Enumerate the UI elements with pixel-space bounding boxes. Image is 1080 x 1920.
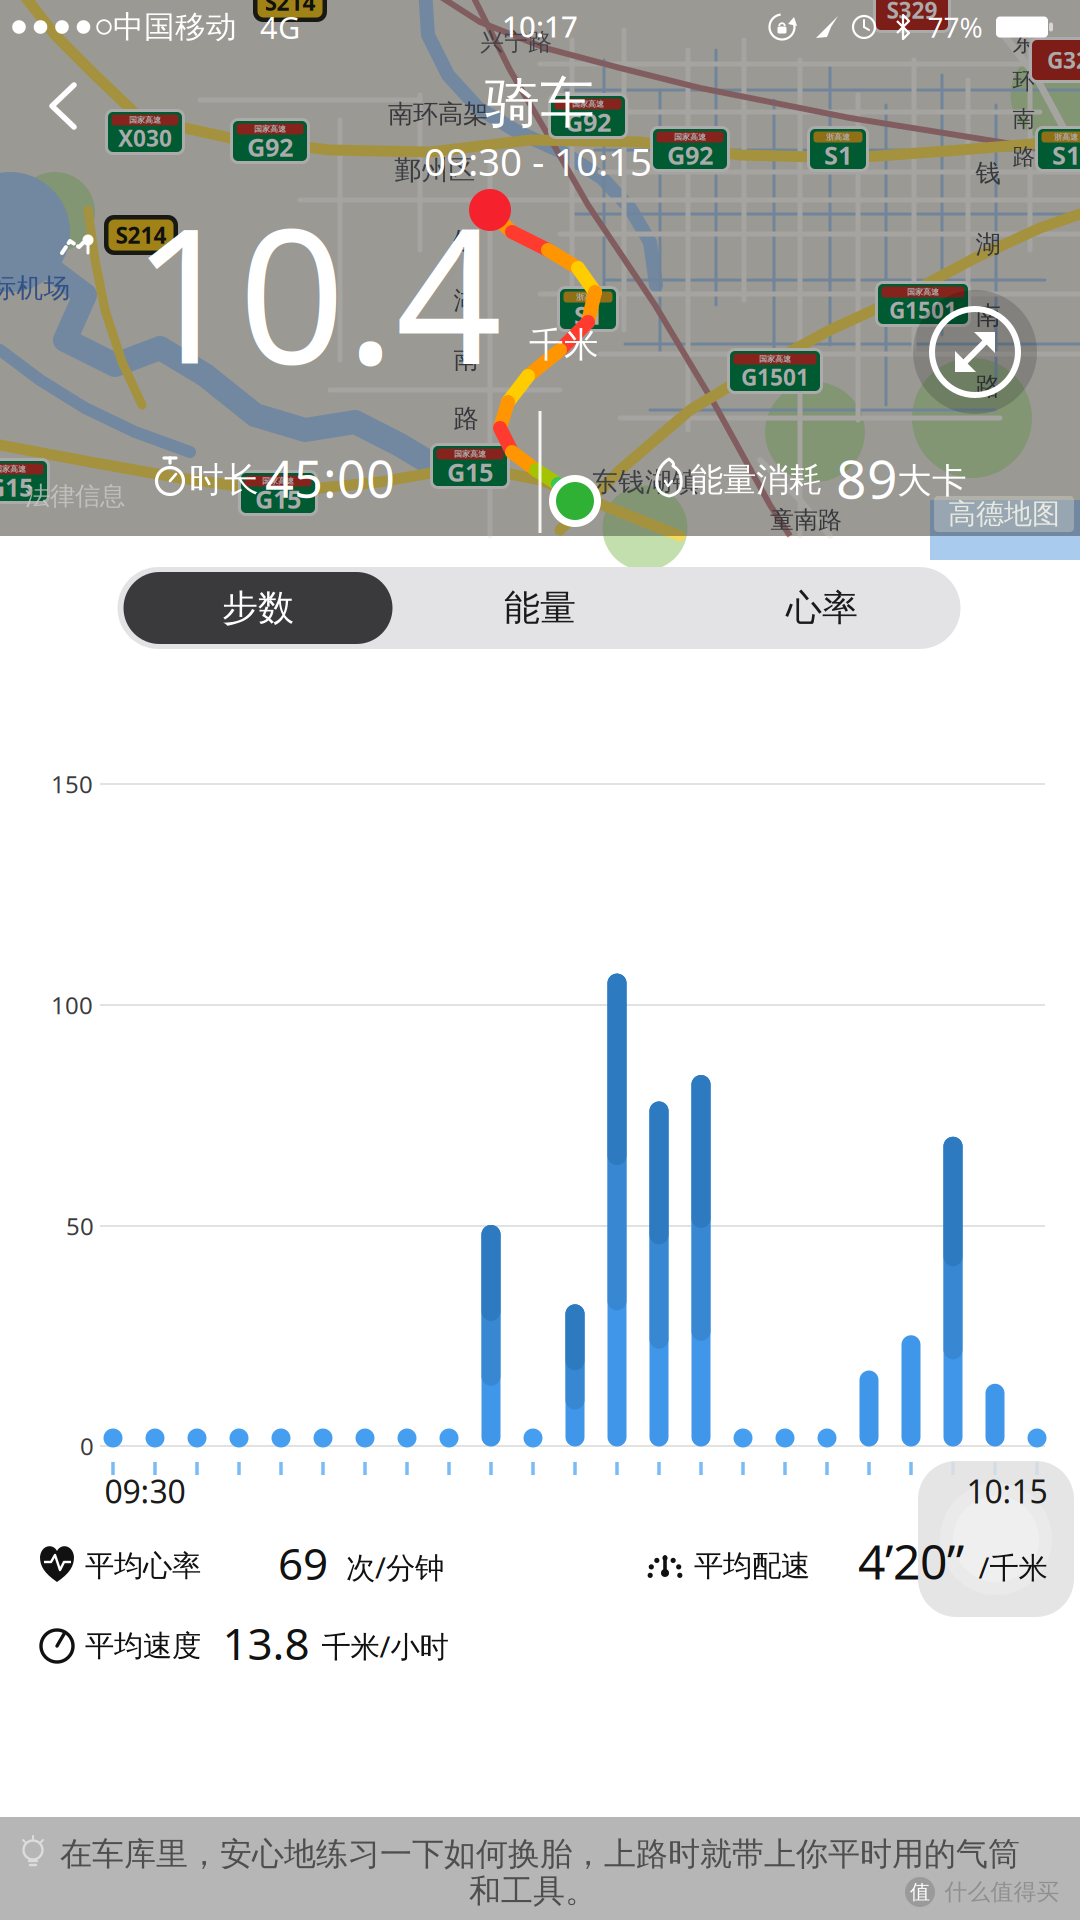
staticText: 高德地图 <box>948 497 1060 531</box>
staticText: S1 <box>574 298 602 332</box>
staticText: 10.4 <box>131 167 502 415</box>
staticText: 50 <box>66 1210 94 1242</box>
staticText: 能量 <box>504 586 576 630</box>
staticText: 千米/小时 <box>321 1626 448 1665</box>
staticText: 0 <box>80 1430 94 1462</box>
staticText: 浙高速 <box>1054 132 1078 142</box>
staticText: S1 <box>824 138 852 172</box>
button[interactable]: 能量 <box>399 567 680 649</box>
staticText: S329 <box>886 0 937 25</box>
staticText: G92 <box>565 105 611 139</box>
staticText: 45:00 <box>265 444 395 512</box>
staticText: G32 <box>1047 45 1080 75</box>
button[interactable]: 心率 <box>681 567 962 649</box>
staticText: 平均配速 <box>694 1548 810 1584</box>
staticText: 100 <box>51 989 93 1021</box>
staticText: 国家高速 <box>0 464 26 474</box>
staticText: 东 <box>1012 29 1035 57</box>
staticText: X030 <box>118 123 172 153</box>
staticText: 千米 <box>529 324 599 366</box>
staticText: 150 <box>51 768 93 800</box>
staticText: 89 <box>836 443 898 513</box>
staticText: 童南路 <box>770 505 842 535</box>
staticText: 国家高速 <box>572 99 604 109</box>
staticText: 中国移动 <box>113 8 237 46</box>
staticText: 湖 <box>453 285 478 316</box>
staticText: 浙高速 <box>826 132 850 142</box>
staticText: 平均速度 <box>85 1628 201 1664</box>
staticText: 国家高速 <box>759 354 791 364</box>
staticText: 和工具。 <box>469 1871 597 1911</box>
staticText: 能量消耗 <box>690 459 822 500</box>
staticText: 国家高速 <box>254 124 286 134</box>
staticText: 鄞州区 <box>394 154 475 186</box>
staticText: 环 <box>1012 67 1035 95</box>
staticText: 南 <box>1012 105 1035 133</box>
staticText: 路 <box>453 403 478 434</box>
staticText: 国家高速 <box>262 476 294 486</box>
staticText: G15 <box>0 470 33 504</box>
staticText: 平均心率 <box>85 1548 201 1584</box>
staticText: 路 <box>1012 143 1035 171</box>
staticText: S1 <box>1052 138 1080 172</box>
staticText: 骑车 <box>485 69 595 136</box>
staticText: 4’20” <box>858 1529 964 1593</box>
staticText: 国家高速 <box>907 287 939 297</box>
staticText: 69 <box>278 1534 328 1592</box>
staticText: 钱 <box>453 226 478 257</box>
staticText: 09:30 - 10:15 <box>424 135 652 187</box>
staticText: 国家高速 <box>129 115 161 125</box>
staticText: 东钱湖镇 <box>591 466 699 498</box>
staticText: /千米 <box>978 1547 1047 1586</box>
staticText: 兴宁路 <box>480 27 552 57</box>
button[interactable]: 步数 <box>117 567 398 649</box>
staticText: 南 <box>453 344 478 375</box>
button[interactable]: 辅助触控 <box>918 1461 1074 1617</box>
staticText: 标机场 <box>0 272 70 304</box>
staticText: G15 <box>255 482 301 516</box>
staticText: G15 <box>447 455 493 489</box>
staticText: 值 <box>910 1880 930 1904</box>
staticText: 钱 <box>975 158 1000 189</box>
staticText: 步数 <box>222 586 294 630</box>
staticText: 浙高速 <box>576 292 600 302</box>
staticText: 77% <box>927 8 982 46</box>
staticText: G1501 <box>889 295 957 325</box>
staticText: 13.8 <box>222 1614 309 1672</box>
staticText: 4G <box>260 7 300 47</box>
staticText: 心率 <box>786 586 858 630</box>
staticText: 09:30 <box>104 1470 185 1512</box>
staticText: 南 <box>975 300 1000 331</box>
staticText: 大卡 <box>897 460 967 502</box>
staticText: 在车库里，安心地练习一下如何换胎，上路时就带上你平时用的气筒 <box>60 1834 1020 1874</box>
staticText: G92 <box>247 130 293 164</box>
staticText: G92 <box>667 138 713 172</box>
staticText: 湖 <box>975 229 1000 260</box>
button[interactable]: 返回 <box>40 80 92 132</box>
staticText: S214 <box>264 0 315 17</box>
staticText: S214 <box>115 220 166 250</box>
staticText: 时长 <box>189 459 259 501</box>
staticText: 10:15 <box>966 1470 1047 1512</box>
staticText: 南环高架 <box>388 98 488 129</box>
staticText: 什么值得买 <box>944 1878 1059 1906</box>
staticText: 国家高速 <box>454 449 486 459</box>
staticText: G1501 <box>741 362 809 392</box>
staticText: 法律信息 <box>25 480 125 511</box>
staticText: 10:17 <box>502 6 578 45</box>
staticText: 次/分钟 <box>346 1547 444 1586</box>
staticText: 国家高速 <box>674 132 706 142</box>
staticText: 路 <box>975 371 1000 402</box>
button[interactable]: 全屏地图 <box>913 290 1037 414</box>
